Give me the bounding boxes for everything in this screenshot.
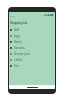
staticText: 9:30: [10, 14, 15, 17]
button[interactable]: Coffee: [9, 57, 55, 63]
button[interactable]: Rice: [9, 63, 55, 69]
button[interactable]: Milk: [9, 27, 55, 33]
button[interactable]: Bread: [9, 39, 55, 45]
staticText: Rice: [14, 64, 20, 68]
button[interactable]: Bananas: [9, 45, 55, 51]
staticText: Shopping List: [10, 21, 28, 25]
staticText: Coffee: [14, 58, 23, 62]
button[interactable]: Eggs: [9, 33, 55, 39]
staticText: Bread: [14, 40, 22, 44]
staticText: Orange juice: [14, 52, 31, 56]
staticText: Milk: [14, 28, 20, 32]
staticText: Eggs: [14, 34, 21, 38]
button[interactable]: Orange juice: [9, 51, 55, 57]
staticText: Bananas: [14, 46, 25, 50]
